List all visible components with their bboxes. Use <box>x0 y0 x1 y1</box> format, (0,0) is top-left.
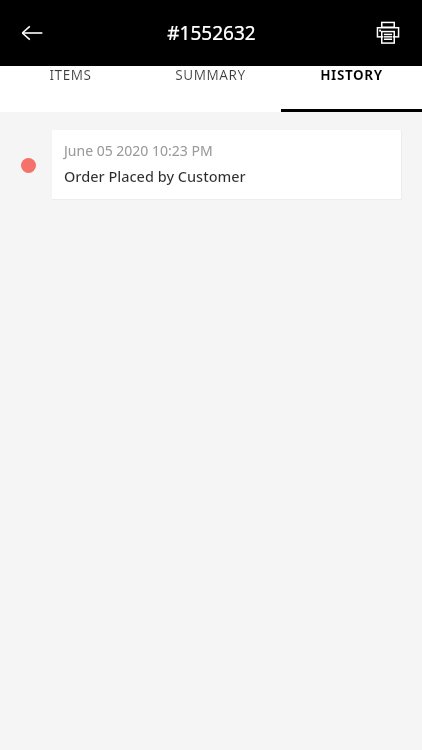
button[interactable]: HISTORY <box>281 66 422 84</box>
staticText: June 05 2020 10:23 PM <box>64 141 213 160</box>
staticText: #1552632 <box>167 20 256 46</box>
button[interactable]: Print <box>364 9 412 57</box>
staticText: ITEMS <box>49 66 92 84</box>
staticText: SUMMARY <box>175 66 246 84</box>
button[interactable]: Back <box>8 9 56 57</box>
staticText: HISTORY <box>320 66 383 84</box>
button[interactable]: SUMMARY <box>140 66 281 84</box>
button[interactable]: June 05 2020 10:23 PM <box>52 130 401 199</box>
button[interactable]: ITEMS <box>0 66 140 84</box>
staticText: Order Placed by Customer <box>64 166 246 186</box>
